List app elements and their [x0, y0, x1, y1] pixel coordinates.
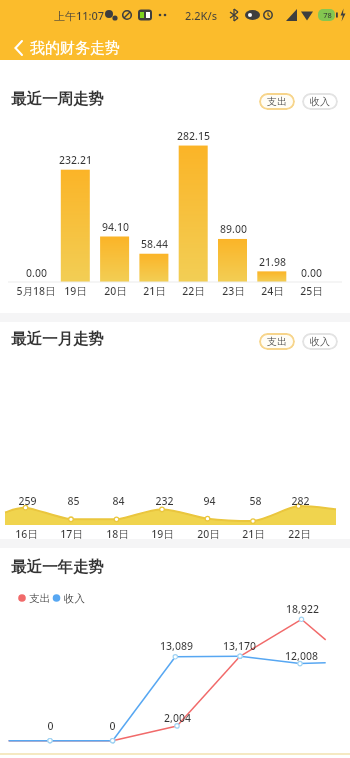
staticText: 最近一周走势 [11, 89, 104, 109]
staticText: 94.10 [102, 220, 129, 234]
staticText: 21日 [242, 527, 265, 541]
staticText: 0.00 [301, 266, 322, 280]
staticText: 12,008 [285, 649, 318, 663]
staticText: 0.00 [26, 266, 47, 280]
staticText: 20日 [197, 527, 220, 541]
button[interactable]: 收入 [302, 333, 338, 350]
staticText: 2,004 [164, 711, 191, 725]
staticText: 18日 [106, 527, 129, 541]
staticText: 259 [18, 494, 37, 508]
staticText: 最近一年走势 [11, 557, 104, 577]
staticText: 282 [291, 494, 310, 508]
staticText: 支出 [267, 335, 287, 348]
staticText: 89.00 [220, 222, 247, 236]
staticText: 我的财务走势 [30, 39, 120, 58]
staticText: 17日 [60, 527, 83, 541]
staticText: 5月18日 [16, 284, 56, 298]
staticText: 58.44 [141, 237, 168, 251]
staticText: 19日 [64, 284, 87, 298]
staticText: 支出 [267, 95, 287, 108]
staticText: 20日 [104, 284, 127, 298]
staticText: 24日 [261, 284, 284, 298]
staticText: 0 [109, 719, 116, 733]
staticText: 85 [67, 494, 80, 508]
staticText: 232 [155, 494, 174, 508]
staticText: 13,170 [223, 639, 256, 653]
staticText: 收入 [310, 95, 330, 108]
staticText: 收入 [64, 592, 85, 605]
staticText: 94 [203, 494, 216, 508]
staticText: 16日 [15, 527, 38, 541]
staticText: 2.2K/s [185, 8, 218, 23]
staticText: 最近一月走势 [11, 329, 104, 349]
staticText: 282.15 [177, 129, 210, 143]
staticText: 23日 [222, 284, 245, 298]
staticText: 25日 [300, 284, 323, 298]
staticText: 上午11:07 [54, 8, 105, 23]
staticText: 84 [112, 494, 125, 508]
staticText: 58 [249, 494, 262, 508]
staticText: 78 [323, 10, 332, 20]
button[interactable]: 收入 [302, 93, 338, 110]
staticText: 22日 [288, 527, 311, 541]
button[interactable] [0, 30, 200, 60]
staticText: 收入 [310, 335, 330, 348]
button[interactable]: 支出 [259, 93, 295, 110]
button[interactable]: 支出 [259, 333, 295, 350]
staticText: 13,089 [160, 639, 193, 653]
staticText: 支出 [29, 592, 50, 605]
staticText: 0 [47, 719, 54, 733]
staticText: 18,922 [286, 602, 319, 616]
staticText: 21.98 [259, 255, 286, 269]
staticText: 21日 [143, 284, 166, 298]
staticText: 232.21 [59, 153, 92, 167]
staticText: 19日 [151, 527, 174, 541]
staticText: 22日 [182, 284, 205, 298]
